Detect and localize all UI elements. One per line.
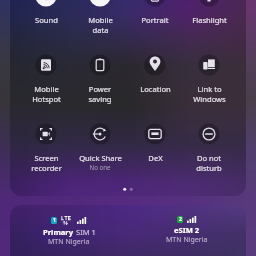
button[interactable]: Do not disturb	[182, 120, 236, 180]
staticText: eSIM 2	[174, 225, 200, 235]
button[interactable]: Mobile Hotspot	[19, 51, 73, 111]
button[interactable]: Portrait	[128, 0, 182, 42]
button[interactable]: Flashlight	[182, 0, 236, 42]
button[interactable]: Quick Share	[73, 120, 127, 180]
button[interactable]: Screen recorder	[19, 120, 73, 180]
staticText: No one	[89, 163, 111, 171]
button[interactable]: Link to Windows	[182, 51, 236, 111]
staticText: Quick Share	[79, 153, 122, 163]
staticText: 2	[179, 216, 182, 223]
staticText: Screen recorder	[31, 153, 62, 173]
button[interactable]: Mobile data	[73, 0, 127, 42]
button[interactable]: 1	[10, 205, 128, 256]
button[interactable]: 2	[128, 205, 246, 256]
staticText: Mobile Hotspot	[32, 84, 61, 104]
staticText: Mobile data	[88, 15, 113, 35]
staticText: MTN Nigeria	[166, 235, 208, 245]
staticText: Power saving	[88, 84, 112, 104]
staticText: Primary	[43, 227, 74, 237]
button[interactable]: Sound	[19, 0, 73, 42]
staticText: Portrait	[141, 15, 169, 25]
staticText: 1	[53, 217, 56, 224]
staticText: Do not disturb	[196, 153, 222, 173]
button[interactable]: Power saving	[73, 51, 127, 111]
staticText: Link to Windows	[193, 84, 226, 104]
staticText: Sound	[35, 15, 58, 25]
staticText: Flashlight	[192, 15, 227, 25]
staticText: DeX	[148, 153, 163, 163]
button[interactable]: Location	[128, 51, 182, 111]
staticText: Location	[140, 84, 171, 94]
staticText: SIM 1	[74, 227, 96, 237]
staticText: MTN Nigeria	[48, 237, 90, 247]
button[interactable]: DeX	[128, 120, 182, 180]
